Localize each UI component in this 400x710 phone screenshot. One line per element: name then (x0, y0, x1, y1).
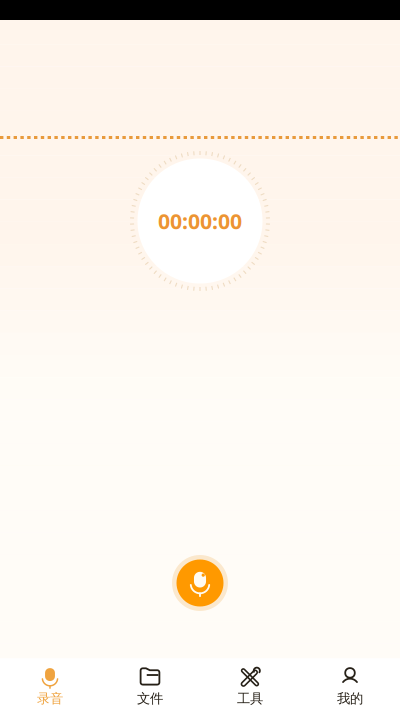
staticText: 我的 (337, 690, 363, 707)
staticText: 00:00:00 (158, 207, 242, 235)
button[interactable]: 录音 (0, 658, 100, 710)
button[interactable]: 工具 (200, 658, 300, 710)
staticText: 工具 (237, 690, 263, 707)
button[interactable]: 文件 (100, 658, 200, 710)
button[interactable]: 我的 (300, 658, 400, 710)
staticText: 录音 (37, 690, 63, 707)
button[interactable]: Record (168, 551, 232, 615)
staticText: 文件 (137, 690, 163, 707)
